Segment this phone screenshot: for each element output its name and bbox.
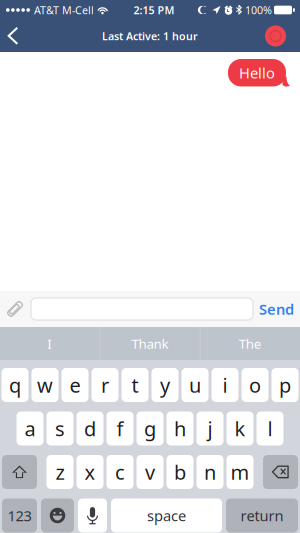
staticText: r bbox=[101, 372, 109, 398]
staticText: 100% bbox=[245, 3, 272, 17]
button[interactable]: y bbox=[151, 368, 178, 402]
staticText: e bbox=[69, 372, 80, 398]
button[interactable]: Emoji bbox=[41, 498, 74, 532]
button[interactable]: i bbox=[211, 368, 238, 402]
button[interactable]: s bbox=[46, 411, 73, 445]
staticText: x bbox=[84, 459, 95, 485]
button[interactable]: t bbox=[121, 368, 148, 402]
button[interactable]: h bbox=[166, 411, 193, 445]
button[interactable]: Attach bbox=[0, 291, 31, 327]
staticText: z bbox=[55, 459, 64, 485]
staticText: o bbox=[249, 372, 261, 398]
button[interactable]: a bbox=[16, 411, 43, 445]
staticText: q bbox=[9, 372, 21, 398]
staticText: Thank bbox=[131, 335, 168, 352]
button[interactable]: 123 bbox=[2, 498, 37, 532]
staticText: y bbox=[160, 372, 170, 398]
button[interactable]: The bbox=[201, 327, 300, 360]
staticText: d bbox=[84, 415, 96, 442]
button[interactable]: Shift bbox=[2, 455, 37, 489]
staticText: a bbox=[24, 415, 35, 442]
button[interactable]: b bbox=[166, 455, 193, 489]
staticText: 2:15 PM bbox=[133, 3, 174, 17]
staticText: 123 bbox=[7, 506, 31, 525]
button[interactable]: Send bbox=[253, 291, 300, 327]
staticText: s bbox=[55, 415, 65, 442]
button[interactable]: f bbox=[106, 411, 133, 445]
button[interactable]: x bbox=[76, 455, 103, 489]
staticText: g bbox=[144, 415, 156, 442]
staticText: c bbox=[115, 459, 125, 485]
button[interactable]: Dictate bbox=[78, 498, 107, 532]
button[interactable]: I bbox=[0, 327, 99, 360]
button[interactable]: k bbox=[226, 411, 253, 445]
button[interactable]: w bbox=[31, 368, 58, 402]
button[interactable]: z bbox=[46, 455, 73, 489]
staticText: j bbox=[207, 415, 212, 442]
button[interactable]: d bbox=[76, 411, 103, 445]
staticText: t bbox=[131, 372, 138, 398]
button[interactable]: Delete bbox=[263, 455, 298, 489]
staticText: Send bbox=[259, 299, 294, 319]
staticText: I bbox=[47, 335, 52, 352]
button[interactable]: j bbox=[196, 411, 223, 445]
button[interactable]: g bbox=[136, 411, 163, 445]
button[interactable]: Back bbox=[0, 20, 34, 52]
button[interactable]: r bbox=[91, 368, 118, 402]
button[interactable]: m bbox=[226, 455, 253, 489]
staticText: return bbox=[240, 506, 283, 525]
button[interactable]: o bbox=[241, 368, 268, 402]
button[interactable]: return bbox=[226, 498, 298, 532]
staticText: i bbox=[222, 372, 227, 398]
button[interactable]: p bbox=[271, 368, 298, 402]
staticText: Last Active: 1 hour bbox=[102, 29, 198, 43]
button[interactable]: v bbox=[136, 455, 163, 489]
button[interactable]: u bbox=[181, 368, 208, 402]
staticText: w bbox=[37, 372, 53, 398]
button[interactable]: Thank bbox=[100, 327, 200, 360]
staticText: space bbox=[147, 506, 186, 525]
button[interactable]: l bbox=[256, 411, 283, 445]
staticText: v bbox=[145, 459, 155, 485]
button[interactable]: c bbox=[106, 455, 133, 489]
staticText: h bbox=[174, 415, 186, 442]
staticText: f bbox=[116, 415, 123, 442]
staticText: p bbox=[279, 372, 291, 398]
button[interactable]: e bbox=[61, 368, 88, 402]
staticText: k bbox=[234, 415, 245, 442]
staticText: l bbox=[267, 415, 272, 442]
staticText: b bbox=[174, 459, 186, 485]
staticText: AT&T M-Cell bbox=[34, 3, 94, 17]
staticText: Hello bbox=[239, 63, 275, 82]
staticText: u bbox=[189, 372, 201, 398]
staticText: m bbox=[230, 459, 249, 485]
button[interactable]: Video call bbox=[260, 20, 300, 52]
staticText: The bbox=[239, 335, 262, 352]
button[interactable]: q bbox=[1, 368, 28, 402]
button[interactable]: n bbox=[196, 455, 223, 489]
staticText: n bbox=[204, 459, 216, 485]
button[interactable]: space bbox=[111, 498, 222, 532]
